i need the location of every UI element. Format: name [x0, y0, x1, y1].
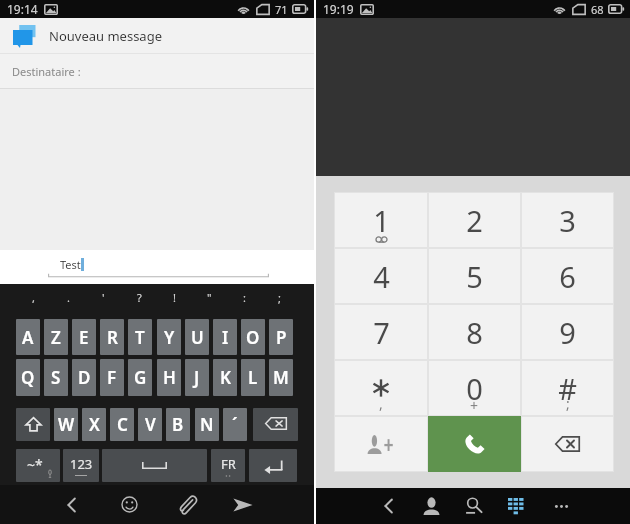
button[interactable]: Language FR — [211, 449, 245, 482]
staticText: X — [89, 413, 100, 436]
button[interactable]: Numbers — [63, 449, 99, 482]
staticText: E — [79, 326, 89, 349]
button[interactable]: Delete — [522, 417, 613, 471]
button[interactable]: P — [269, 319, 293, 355]
button[interactable]: 2 — [429, 193, 520, 247]
staticText: H — [163, 366, 176, 389]
staticText: M — [273, 366, 289, 389]
button[interactable]: 5 — [429, 249, 520, 303]
button[interactable]: ´ — [223, 408, 247, 441]
staticText: 123 — [70, 455, 93, 473]
button[interactable]: Emoji — [108, 485, 150, 524]
button[interactable]: E — [72, 319, 96, 355]
staticText: , — [32, 290, 35, 304]
button[interactable]: X — [82, 408, 106, 441]
button[interactable]: 7 — [335, 305, 427, 359]
staticText: F — [107, 366, 117, 389]
staticText: 4 — [373, 257, 390, 296]
staticText: . — [67, 290, 70, 304]
button[interactable]: S — [44, 359, 68, 396]
button[interactable]: Destinataire : — [0, 54, 314, 89]
button[interactable]: F — [100, 359, 124, 396]
button[interactable]: 9 — [522, 305, 613, 359]
button[interactable]: Send — [222, 485, 264, 524]
button[interactable]: Contacts — [410, 488, 452, 524]
staticText: : — [243, 290, 246, 304]
button[interactable]: 0 — [429, 361, 520, 415]
button[interactable]: Q — [16, 359, 40, 396]
staticText: R — [107, 326, 118, 349]
button[interactable]: T — [128, 319, 152, 355]
button[interactable]: Symbols — [16, 449, 60, 482]
staticText: U — [191, 326, 204, 349]
staticText: N — [200, 413, 214, 436]
button[interactable]: 4 — [335, 249, 427, 303]
button[interactable]: Space — [102, 449, 207, 482]
staticText: " — [207, 290, 212, 304]
button[interactable]: D — [72, 359, 96, 396]
staticText: D — [78, 366, 91, 389]
staticText: 19:14 — [7, 1, 38, 17]
staticText: Test — [60, 257, 81, 272]
staticText: W — [58, 413, 75, 436]
button[interactable]: M — [269, 359, 293, 396]
button[interactable]: O — [241, 319, 265, 355]
button[interactable]: Attach — [165, 485, 207, 524]
button[interactable]: Enter — [249, 449, 297, 482]
staticText: Y — [164, 326, 175, 349]
staticText: Z — [51, 326, 61, 349]
staticText: T — [135, 326, 145, 349]
button[interactable]: Nouveau message — [0, 18, 314, 54]
button[interactable]: R — [100, 319, 124, 355]
staticText: B — [172, 413, 184, 436]
button[interactable]: Y — [157, 319, 181, 355]
button[interactable]: Dialpad — [495, 488, 537, 524]
staticText: O — [246, 326, 260, 349]
button[interactable]: V — [138, 408, 162, 441]
button[interactable]: Shift — [16, 408, 50, 441]
staticText: 1 — [373, 201, 390, 240]
staticText: ; — [566, 394, 570, 413]
staticText: K — [220, 366, 231, 389]
button[interactable]: * — [335, 361, 427, 415]
button[interactable]: Call — [428, 416, 521, 472]
staticText: ? — [137, 290, 142, 304]
button[interactable]: # — [522, 361, 613, 415]
button[interactable]: G — [128, 359, 152, 396]
staticText: ! — [173, 290, 176, 304]
button[interactable]: W — [54, 408, 78, 441]
button[interactable]: B — [166, 408, 190, 441]
button[interactable]: N — [195, 408, 219, 441]
button[interactable]: 1 — [335, 193, 427, 247]
button[interactable]: Search contacts — [453, 488, 495, 524]
button[interactable]: C — [110, 408, 134, 441]
button[interactable]: I — [213, 319, 237, 355]
staticText: L — [248, 366, 258, 389]
staticText: + — [470, 396, 479, 415]
staticText: 5 — [466, 257, 483, 296]
button[interactable]: Back — [368, 488, 410, 524]
button[interactable]: Add contact — [335, 417, 427, 471]
button[interactable]: A — [16, 319, 40, 355]
button[interactable]: Backspace — [253, 408, 298, 441]
button[interactable]: H — [157, 359, 181, 396]
staticText: S — [51, 366, 61, 389]
button[interactable]: 6 — [522, 249, 613, 303]
staticText: 19:19 — [323, 1, 354, 17]
staticText: 6 — [559, 257, 576, 296]
button[interactable]: K — [213, 359, 237, 396]
button[interactable]: U — [185, 319, 209, 355]
button[interactable]: J — [185, 359, 209, 396]
staticText: I — [222, 326, 229, 349]
button[interactable]: More options — [540, 488, 582, 524]
staticText: Q — [21, 366, 35, 389]
button[interactable]: 3 — [522, 193, 613, 247]
button[interactable]: L — [241, 359, 265, 396]
staticText: ~* — [27, 455, 43, 474]
staticText: J — [194, 366, 200, 389]
button[interactable]: Z — [44, 319, 68, 355]
staticText: C — [117, 413, 128, 436]
staticText: 68 — [591, 2, 604, 17]
button[interactable]: Back — [51, 485, 93, 524]
button[interactable]: 8 — [429, 305, 520, 359]
